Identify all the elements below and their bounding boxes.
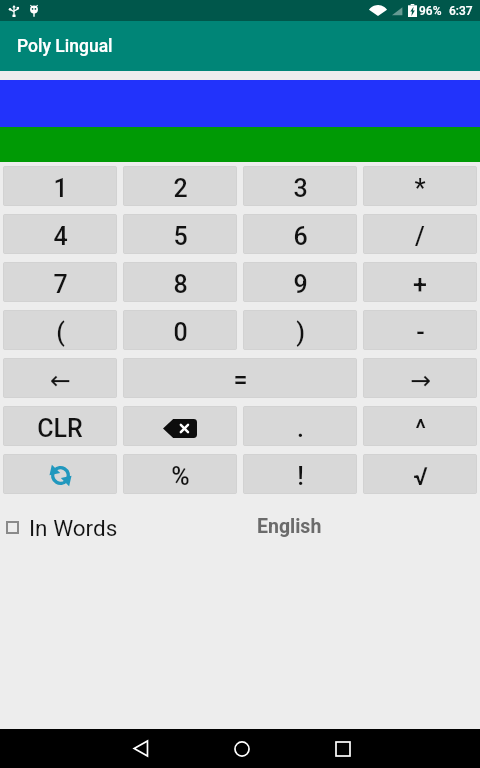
button[interactable]: ^: [363, 406, 477, 446]
staticText: 1: [53, 174, 68, 203]
staticText: 6: [293, 222, 308, 251]
button[interactable]: √: [363, 454, 477, 494]
staticText: 2: [173, 174, 188, 203]
button[interactable]: *: [363, 166, 477, 206]
button[interactable]: 4: [3, 214, 117, 254]
button[interactable]: +: [363, 262, 477, 302]
button[interactable]: ): [243, 310, 357, 350]
staticText: 5: [173, 222, 188, 251]
button[interactable]: 9: [243, 262, 357, 302]
button[interactable]: -: [363, 310, 477, 350]
button[interactable]: 1: [3, 166, 117, 206]
button[interactable]: .: [243, 406, 357, 446]
button[interactable]: CLR: [3, 406, 117, 446]
button[interactable]: =: [123, 358, 357, 398]
staticText: In Words: [29, 515, 118, 541]
staticText: →: [410, 366, 431, 395]
button[interactable]: Back: [111, 729, 171, 768]
button[interactable]: →: [363, 358, 477, 398]
staticText: %: [171, 462, 190, 491]
staticText: 8: [173, 270, 188, 299]
button[interactable]: (: [3, 310, 117, 350]
staticText: CLR: [37, 414, 83, 443]
button[interactable]: Swap: [3, 454, 117, 494]
button[interactable]: 6: [243, 214, 357, 254]
staticText: /: [415, 222, 425, 251]
button[interactable]: 3: [243, 166, 357, 206]
staticText: *: [414, 174, 426, 203]
staticText: .: [297, 414, 304, 443]
staticText: ^: [415, 414, 426, 443]
staticText: 9: [293, 270, 308, 299]
staticText: ): [296, 318, 305, 347]
button[interactable]: %: [123, 454, 237, 494]
staticText: =: [233, 366, 248, 395]
button[interactable]: 0: [123, 310, 237, 350]
staticText: (: [56, 318, 65, 347]
button[interactable]: 5: [123, 214, 237, 254]
button[interactable]: 2: [123, 166, 237, 206]
staticText: !: [297, 462, 304, 491]
staticText: 6:37: [449, 4, 473, 18]
staticText: Poly Lingual: [17, 36, 113, 57]
button[interactable]: Home: [212, 729, 272, 768]
button[interactable]: English: [257, 515, 322, 538]
staticText: -: [416, 318, 425, 347]
staticText: 3: [293, 174, 308, 203]
button[interactable]: 8: [123, 262, 237, 302]
staticText: 4: [53, 222, 68, 251]
button[interactable]: In Words: [4, 510, 120, 544]
staticText: +: [413, 270, 427, 299]
button[interactable]: Recent apps: [313, 729, 373, 768]
button[interactable]: 7: [3, 262, 117, 302]
button[interactable]: ←: [3, 358, 117, 398]
staticText: 96%: [419, 4, 442, 18]
staticText: 0: [173, 318, 188, 347]
staticText: √: [413, 462, 428, 491]
staticText: ←: [50, 366, 71, 395]
staticText: 7: [53, 270, 68, 299]
button[interactable]: !: [243, 454, 357, 494]
button[interactable]: Backspace: [123, 406, 237, 446]
button[interactable]: /: [363, 214, 477, 254]
